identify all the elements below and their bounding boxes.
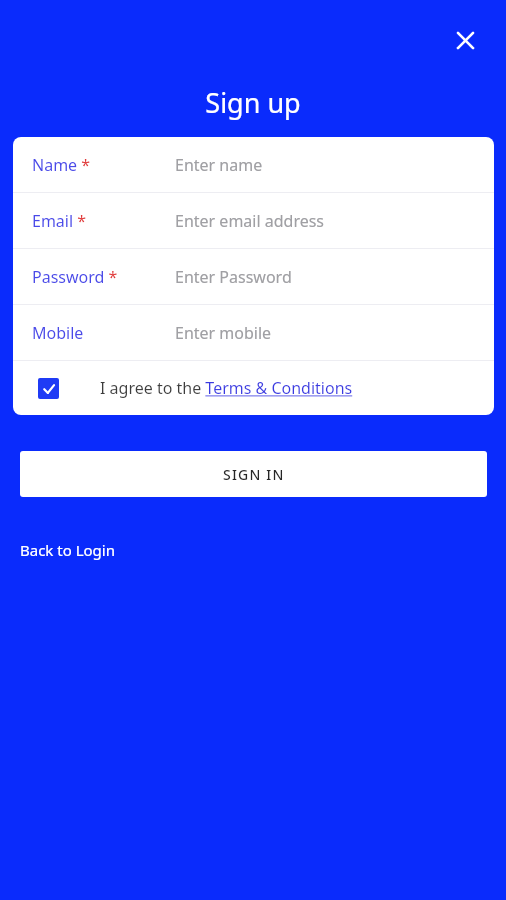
staticText: Enter name — [175, 154, 263, 176]
button[interactable]: Close — [441, 16, 489, 64]
button[interactable]: Back to Login — [20, 536, 115, 564]
button[interactable]: Email * — [13, 193, 494, 248]
staticText: Name * — [32, 154, 91, 176]
staticText: Mobile — [32, 322, 84, 344]
button[interactable]: I agree to the Terms & Conditions — [13, 361, 494, 415]
staticText: I agree to the Terms & Conditions — [100, 377, 353, 399]
staticText: SIGN IN — [223, 465, 285, 484]
button[interactable]: Password * — [13, 249, 494, 304]
button[interactable]: Name * — [13, 137, 494, 192]
staticText: Enter email address — [175, 210, 325, 232]
button[interactable]: Mobile — [13, 305, 494, 360]
staticText: Back to Login — [20, 540, 115, 560]
staticText: Password * — [32, 266, 118, 288]
staticText: Email * — [32, 210, 87, 232]
button[interactable]: SIGN IN — [20, 451, 487, 497]
staticText: Enter Password — [175, 266, 292, 288]
staticText: Enter mobile — [175, 322, 272, 344]
staticText: Sign up — [205, 84, 301, 121]
